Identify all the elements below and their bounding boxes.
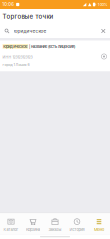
staticText: город 1 Линия 6 [2, 62, 29, 67]
staticText: Корзина [26, 227, 40, 232]
staticText: Торговые точки [2, 13, 53, 20]
staticText: 100% [98, 2, 108, 7]
staticText: юридическое [13, 28, 46, 34]
staticText: юридическое [3, 44, 27, 49]
staticText: Заказы [48, 227, 61, 232]
staticText: История [69, 227, 84, 232]
button[interactable]: Каталог [0, 213, 22, 234]
staticText: 10:06 [2, 2, 14, 7]
button[interactable]: юридическое [0, 40, 110, 71]
button[interactable]: Корзина [22, 213, 44, 234]
button[interactable]: Подробнее [100, 44, 107, 60]
button[interactable]: Заказы [44, 213, 66, 234]
staticText: Меню [94, 227, 104, 232]
staticText: | название (есть лицензия) [28, 44, 75, 49]
button[interactable]: История [66, 213, 88, 234]
staticText: Каталог [3, 227, 18, 232]
button[interactable]: Очистить поиск [101, 28, 110, 34]
staticText: ИНН 123123123123 [2, 55, 32, 59]
button[interactable]: Меню [88, 213, 110, 234]
